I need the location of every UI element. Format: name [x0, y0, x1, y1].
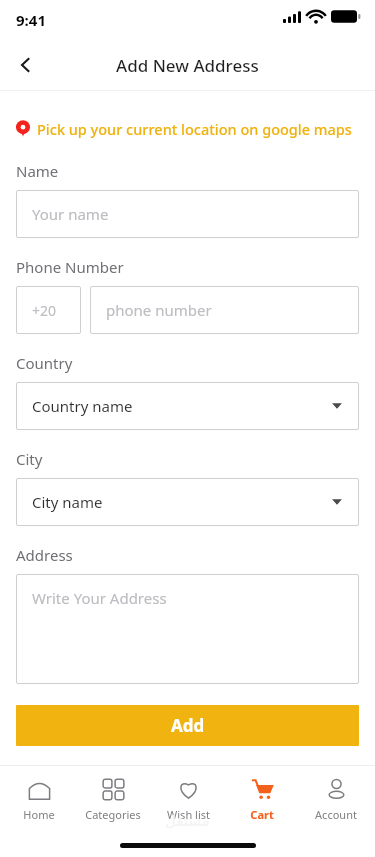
button[interactable]: Add — [16, 705, 359, 746]
staticText: Cart — [250, 807, 274, 822]
button[interactable]: phone number — [90, 286, 359, 334]
button[interactable]: Account — [301, 776, 371, 824]
staticText: Phone Number — [16, 257, 124, 277]
staticText: Add — [171, 714, 205, 737]
staticText: Your name — [32, 204, 109, 224]
staticText: Name — [16, 161, 59, 181]
button[interactable]: Cart — [227, 776, 297, 824]
staticText: مستقل — [165, 812, 210, 829]
staticText: Country name — [32, 396, 331, 416]
staticText: +20 — [32, 301, 57, 320]
button[interactable]: Categories — [78, 776, 148, 824]
button[interactable]: Country name — [16, 382, 359, 430]
button[interactable]: Back — [6, 45, 46, 85]
button[interactable]: Your name — [16, 190, 359, 238]
staticText: Wish list — [167, 807, 210, 822]
button[interactable]: Home — [4, 776, 74, 824]
staticText: Account — [315, 807, 357, 822]
button[interactable]: Write Your Address — [16, 574, 359, 684]
staticText: 9:41 — [16, 10, 46, 30]
staticText: Pick up your current location on google … — [37, 119, 352, 139]
staticText: Write Your Address — [32, 588, 167, 608]
staticText: Country — [16, 353, 73, 373]
staticText: Address — [16, 545, 73, 565]
button[interactable]: Wish list — [153, 776, 223, 824]
button[interactable]: Pick up your current location on google … — [16, 119, 352, 139]
staticText: City — [16, 449, 43, 469]
staticText: Home — [23, 807, 55, 822]
button[interactable]: City name — [16, 478, 359, 526]
staticText: Categories — [85, 807, 141, 822]
staticText: City name — [32, 492, 331, 512]
button[interactable]: +20 — [16, 286, 81, 334]
staticText: phone number — [106, 300, 212, 320]
staticText: Add New Address — [116, 54, 259, 77]
